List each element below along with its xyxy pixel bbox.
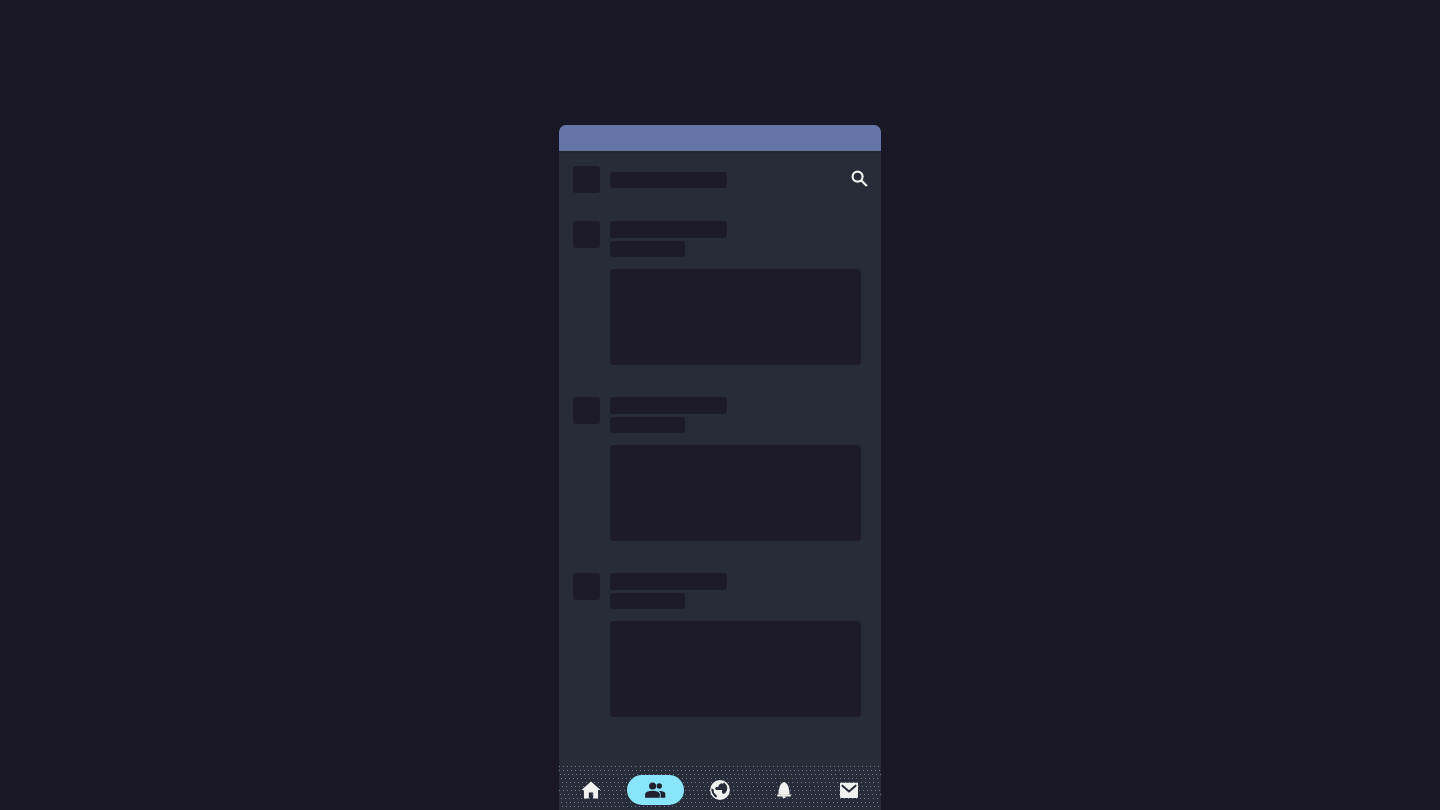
button[interactable]: Notifications xyxy=(752,765,816,810)
button[interactable] xyxy=(559,397,881,547)
button[interactable]: Mail xyxy=(817,765,881,810)
button[interactable] xyxy=(559,573,881,723)
button[interactable]: Home xyxy=(559,765,623,810)
button[interactable]: Explore xyxy=(688,765,752,810)
button[interactable]: People xyxy=(623,765,687,810)
button[interactable] xyxy=(559,221,881,371)
button[interactable]: Search xyxy=(843,163,871,191)
